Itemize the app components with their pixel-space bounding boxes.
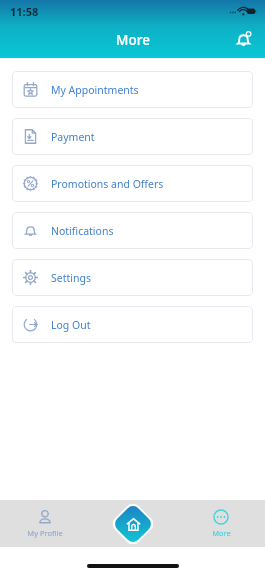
button[interactable]: Settings bbox=[12, 259, 253, 296]
staticText: More bbox=[116, 31, 150, 49]
staticText: Log Out bbox=[51, 318, 91, 332]
staticText: My Profile bbox=[27, 528, 63, 538]
staticText: Notifications bbox=[51, 224, 114, 238]
staticText: Settings bbox=[51, 271, 91, 285]
button[interactable]: Log Out bbox=[12, 306, 253, 343]
staticText: More bbox=[212, 528, 231, 538]
button[interactable]: Notifications bbox=[229, 25, 257, 53]
button[interactable]: Home bbox=[112, 503, 154, 545]
button[interactable]: More bbox=[177, 505, 265, 542]
button[interactable]: My Profile bbox=[0, 505, 89, 542]
button[interactable]: Payment bbox=[12, 118, 253, 155]
button[interactable]: My Appointments bbox=[12, 71, 253, 108]
staticText: Promotions and Offers bbox=[51, 177, 164, 191]
button[interactable]: Promotions and Offers bbox=[12, 165, 253, 202]
staticText: My Appointments bbox=[51, 83, 139, 97]
staticText: Payment bbox=[51, 130, 95, 144]
button[interactable]: Notifications bbox=[12, 212, 253, 249]
staticText: 11:58 bbox=[10, 4, 39, 19]
